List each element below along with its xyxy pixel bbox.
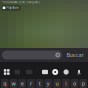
button[interactable]: w	[10, 79, 17, 88]
button[interactable]: Play Store	[1, 5, 20, 10]
button[interactable]: u	[53, 79, 61, 88]
button[interactable]: t	[36, 79, 43, 88]
button[interactable]: r	[27, 79, 35, 88]
button[interactable]: Keyboards	[4, 69, 10, 75]
staticText: i	[65, 80, 66, 87]
button[interactable]: o	[71, 79, 78, 88]
button[interactable]: i	[62, 79, 70, 88]
button[interactable]: p	[79, 79, 87, 88]
staticText: w	[11, 80, 15, 87]
staticText: t	[39, 80, 41, 87]
button[interactable]: Keyboard	[42, 70, 48, 74]
button[interactable]: Clear text	[53, 51, 62, 59]
button[interactable]: Dictate	[77, 69, 81, 75]
button[interactable]: q	[1, 79, 9, 88]
staticText: y	[47, 80, 50, 87]
button[interactable]: Buscar	[64, 49, 86, 60]
staticText: r	[30, 80, 32, 87]
button[interactable]: Emoji	[63, 69, 69, 75]
staticText: Buscar	[66, 51, 83, 59]
button[interactable]: y	[44, 79, 52, 88]
button[interactable]: Record	[52, 69, 58, 75]
staticText: e	[21, 80, 24, 87]
staticText: PROGRAMA DE ACTUALIDAD	[1, 0, 39, 4]
staticText: p	[82, 80, 85, 87]
staticText: Play Store	[6, 6, 19, 9]
button[interactable]: e	[18, 79, 26, 88]
staticText: o	[73, 80, 76, 87]
staticText: q	[3, 80, 6, 87]
staticText: u	[56, 80, 59, 87]
